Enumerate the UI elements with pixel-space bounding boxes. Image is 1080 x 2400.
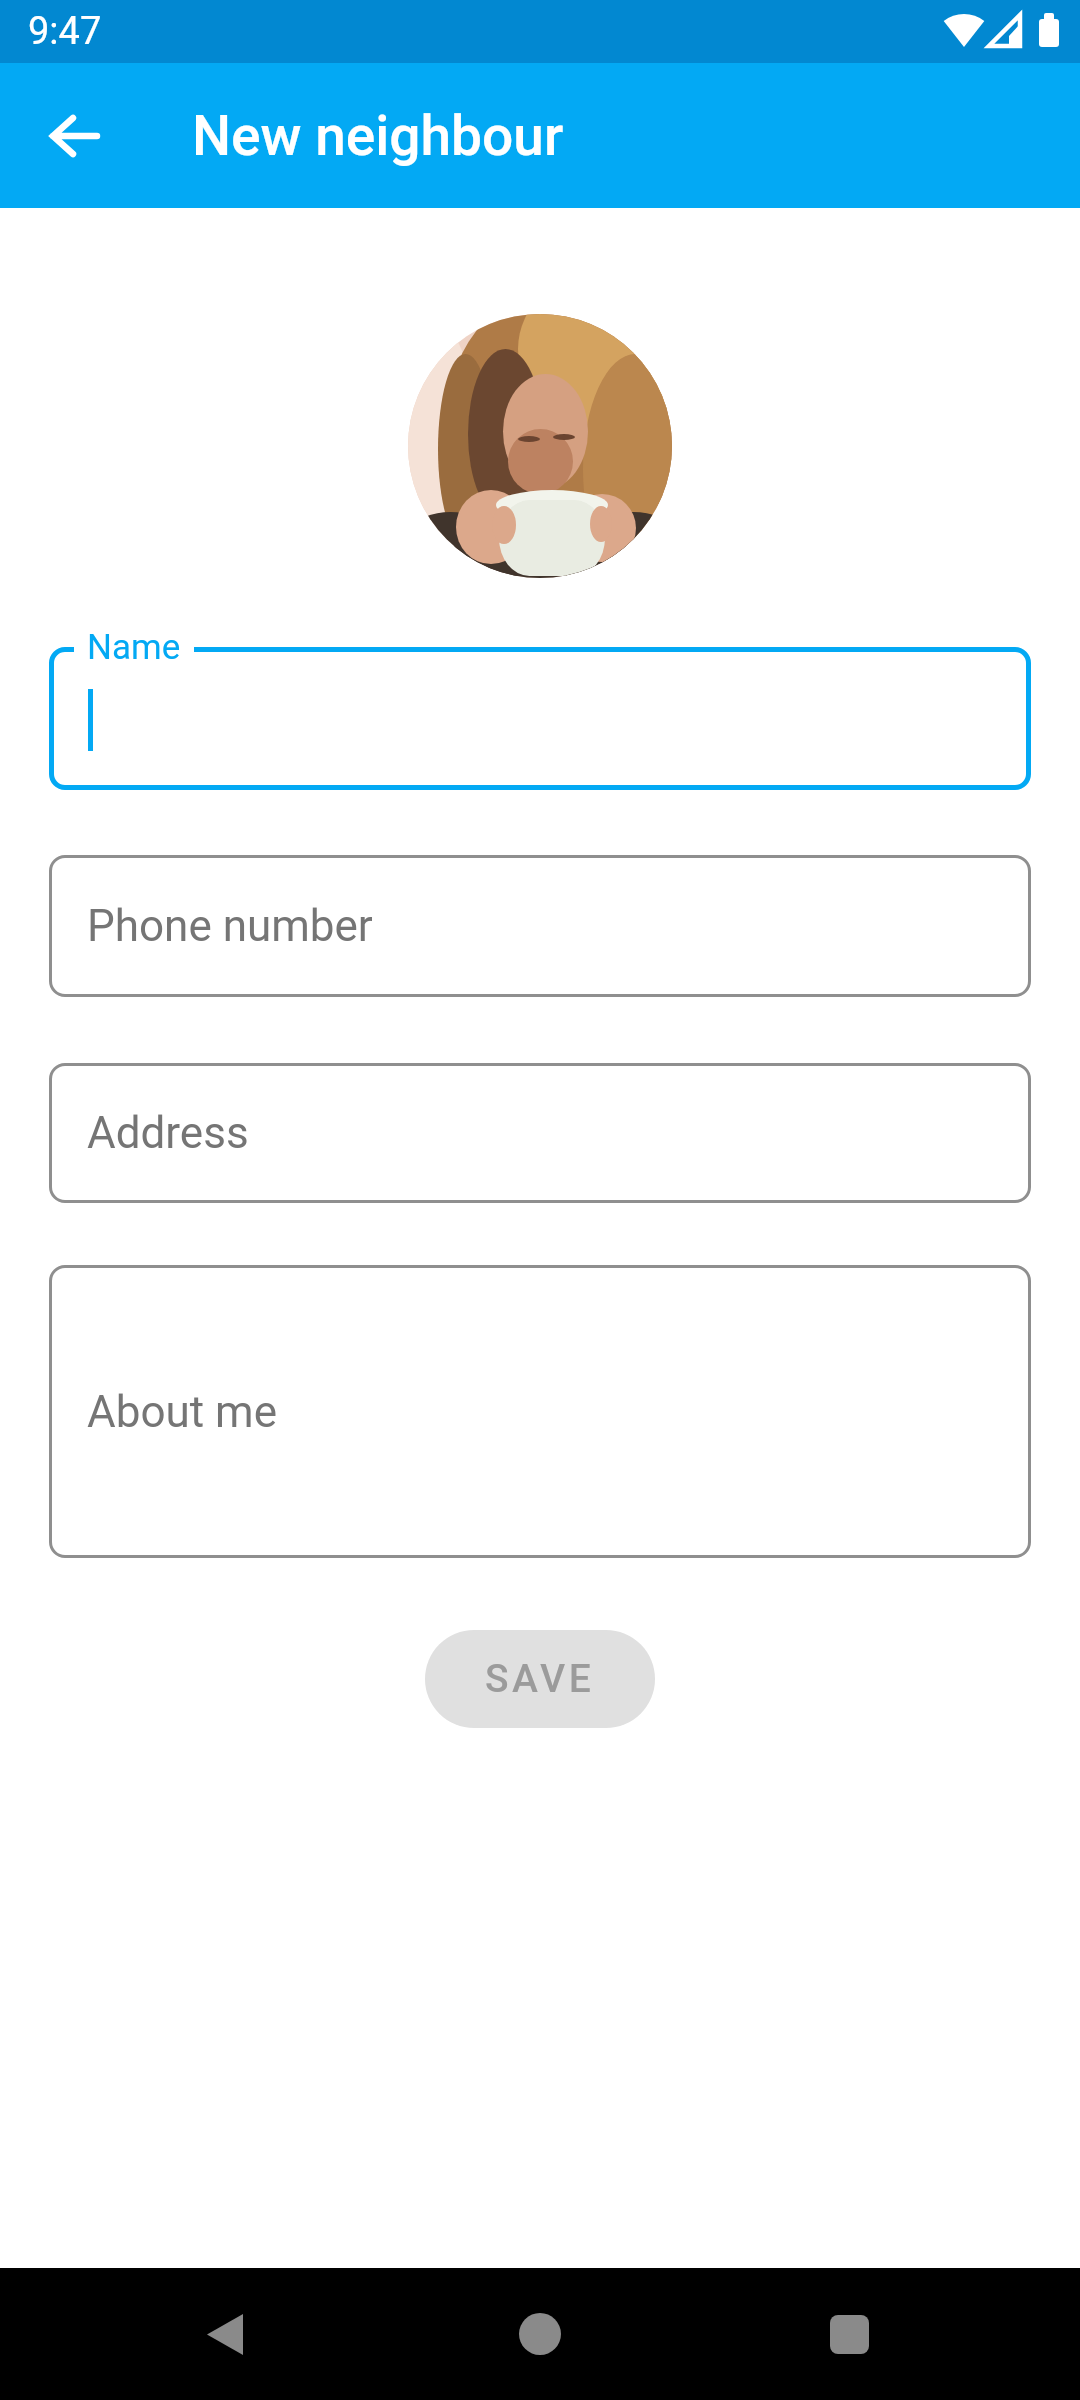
button[interactable]: [30, 92, 118, 180]
staticText: Address: [87, 1107, 249, 1159]
button[interactable]: [49, 647, 1031, 790]
staticText: 9:47: [28, 9, 102, 54]
button[interactable]: SAVE: [425, 1630, 655, 1728]
button[interactable]: Address: [49, 1063, 1031, 1203]
button[interactable]: About me: [49, 1265, 1031, 1558]
staticText: Name: [87, 627, 181, 668]
button[interactable]: Phone number: [49, 855, 1031, 997]
staticText: About me: [87, 1386, 277, 1438]
staticText: SAVE: [485, 1656, 595, 1702]
button[interactable]: [809, 2294, 889, 2374]
button[interactable]: [185, 2294, 265, 2374]
staticText: Phone number: [87, 900, 373, 952]
button[interactable]: [500, 2294, 580, 2374]
staticText: New neighbour: [192, 104, 564, 168]
